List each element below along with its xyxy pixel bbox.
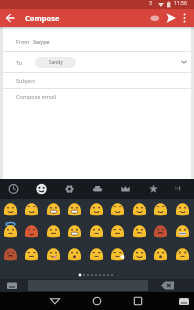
staticText: Sandy [49,59,63,66]
button[interactable] [43,198,64,220]
button[interactable] [164,11,178,25]
button[interactable] [150,220,171,242]
button[interactable] [86,220,107,242]
button[interactable] [129,198,150,220]
button[interactable] [86,243,107,265]
staticText: :-) [175,184,181,192]
button[interactable] [172,243,193,265]
button[interactable]: Compose email [3,89,191,179]
staticText: Compose email [16,93,56,100]
button[interactable] [21,220,42,242]
staticText: 3 [149,0,152,7]
button[interactable] [0,243,21,265]
button[interactable]: :-) [168,179,194,199]
button[interactable] [64,198,85,220]
button[interactable] [0,179,27,199]
button[interactable] [129,220,150,242]
button[interactable] [176,294,192,308]
button[interactable] [0,198,21,220]
staticText: Compose [25,13,60,23]
button[interactable] [21,198,42,220]
button[interactable]: From [3,28,191,51]
button[interactable] [140,179,167,199]
button[interactable] [84,292,110,310]
staticText: From [16,38,30,45]
button[interactable] [84,179,111,199]
button[interactable] [64,220,85,242]
button[interactable] [42,292,68,310]
button[interactable]: To [3,52,191,72]
button[interactable] [154,279,180,292]
button[interactable] [129,243,150,265]
button[interactable] [107,243,128,265]
staticText: Swype [33,38,50,45]
button[interactable] [150,198,171,220]
button[interactable] [43,243,64,265]
button[interactable] [112,179,139,199]
button[interactable] [125,292,151,310]
button[interactable] [107,198,128,220]
button[interactable]: Subject [3,73,191,88]
button[interactable] [28,179,55,199]
button[interactable] [107,220,128,242]
button[interactable] [0,220,21,242]
button[interactable] [64,243,85,265]
button[interactable] [178,11,191,25]
button[interactable] [2,11,18,25]
button[interactable] [43,220,64,242]
staticText: 11:56 [174,0,187,7]
button[interactable] [21,243,42,265]
staticText: To [16,59,23,66]
button[interactable] [148,11,162,25]
button[interactable] [56,179,83,199]
button[interactable]: Sandy [35,57,76,68]
button[interactable] [172,220,193,242]
button[interactable] [4,280,22,291]
staticText: Subject [16,77,35,84]
button[interactable] [172,198,193,220]
button[interactable] [150,243,171,265]
button[interactable] [86,198,107,220]
